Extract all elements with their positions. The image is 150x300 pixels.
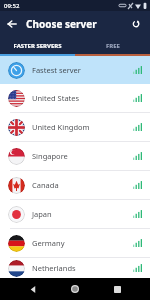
button[interactable]: Refresh xyxy=(126,14,146,34)
button[interactable]: Recent apps xyxy=(108,280,126,298)
staticText: Netherlands xyxy=(32,263,76,273)
button[interactable]: FASTER SERVERS xyxy=(0,36,75,56)
button[interactable]: Singapore xyxy=(0,142,150,170)
staticText: Japan xyxy=(32,209,52,219)
button[interactable]: Home xyxy=(66,280,84,298)
button[interactable]: United States xyxy=(0,84,150,112)
button[interactable]: Back xyxy=(2,14,22,34)
button[interactable]: Netherlands xyxy=(0,258,150,278)
staticText: Fastest server xyxy=(32,65,81,75)
staticText: Choose server xyxy=(26,17,97,31)
staticText: Singapore xyxy=(32,151,68,161)
staticText: United States xyxy=(32,93,80,103)
staticText: Canada xyxy=(32,180,59,190)
staticText: FREE xyxy=(106,42,120,50)
staticText: Germany xyxy=(32,238,65,248)
button[interactable]: Canada xyxy=(0,171,150,199)
button[interactable]: Japan xyxy=(0,200,150,228)
button[interactable]: Fastest server xyxy=(0,56,150,84)
button[interactable]: Back xyxy=(24,280,42,298)
button[interactable]: FREE xyxy=(75,36,150,56)
button[interactable]: United Kingdom xyxy=(0,113,150,141)
button[interactable]: Germany xyxy=(0,229,150,257)
staticText: 09:52 xyxy=(4,2,20,10)
staticText: FASTER SERVERS xyxy=(13,42,62,50)
staticText: United Kingdom xyxy=(32,122,90,132)
